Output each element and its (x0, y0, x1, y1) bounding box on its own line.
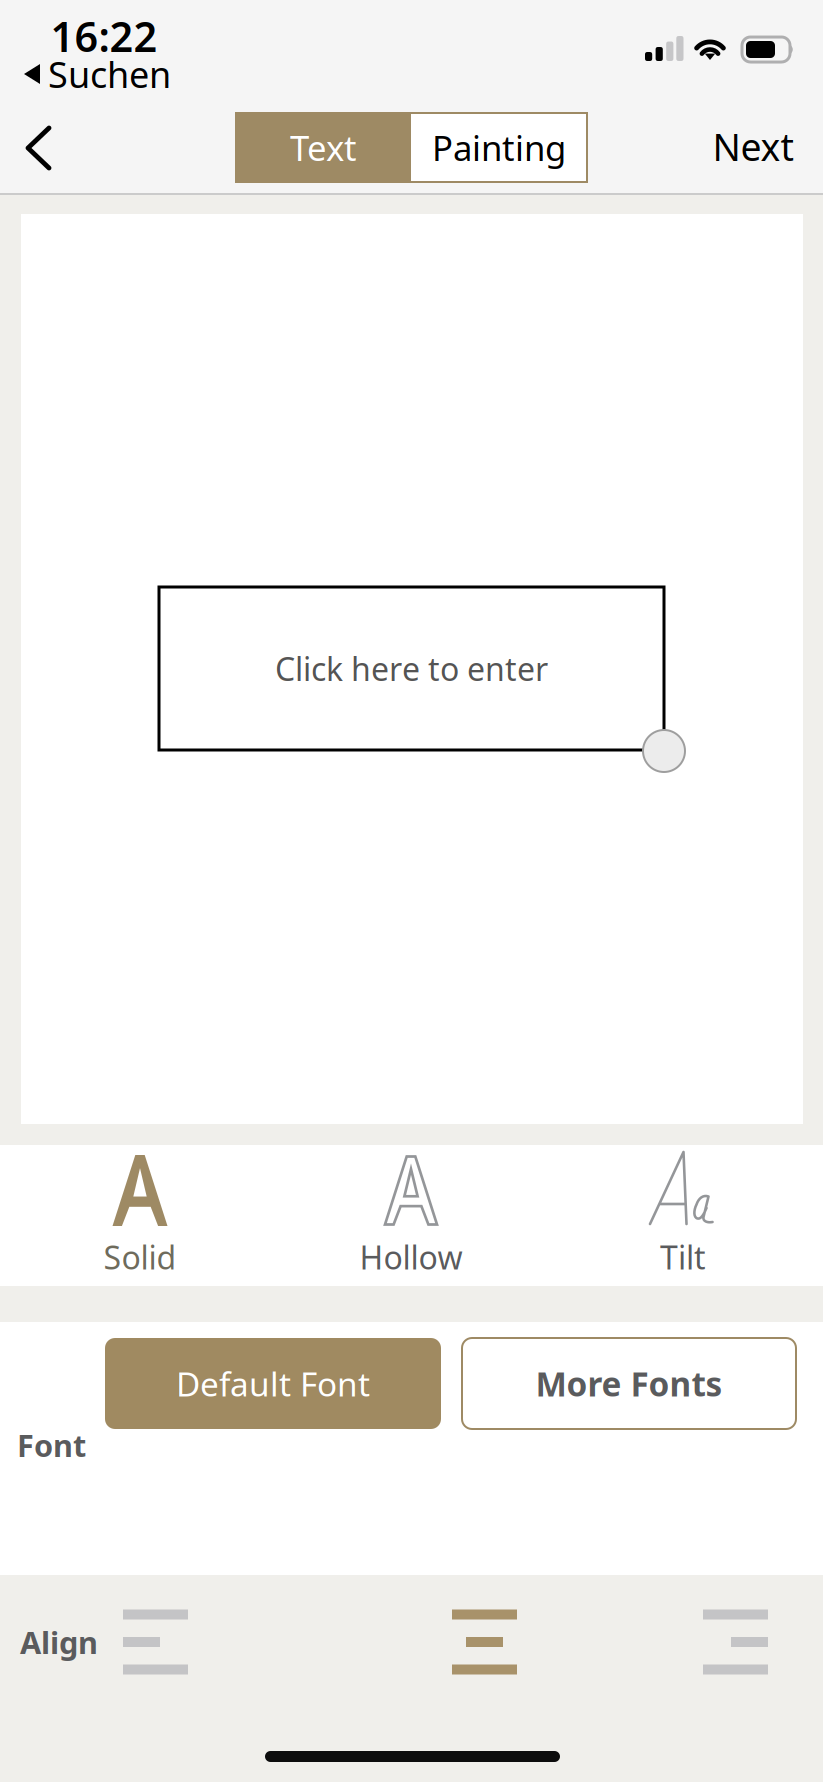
button[interactable]: Align right (673, 1594, 798, 1690)
button[interactable]: Suchen (24, 56, 171, 92)
button[interactable]: Click here to enter (159, 587, 664, 750)
button[interactable]: Hollow (311, 1145, 511, 1286)
button[interactable]: Tilt (583, 1145, 783, 1286)
staticText: Next (712, 122, 793, 171)
staticText: Default Font (176, 1361, 370, 1406)
staticText: 16:22 (50, 9, 157, 63)
staticText: Align (20, 1622, 98, 1662)
button[interactable]: Back (0, 100, 80, 195)
button[interactable]: Next (691, 100, 815, 193)
staticText: Tilt (660, 1236, 706, 1278)
button[interactable]: Text (236, 113, 411, 182)
staticText: More Fonts (535, 1361, 722, 1406)
button[interactable]: Align left (93, 1594, 218, 1690)
staticText: Hollow (359, 1236, 462, 1278)
button[interactable]: More Fonts (462, 1338, 796, 1429)
staticText: Text (290, 124, 357, 170)
button[interactable]: Default Font (105, 1338, 441, 1429)
button[interactable]: Painting (411, 113, 587, 182)
staticText: Font (17, 1425, 86, 1465)
staticText: Solid (103, 1236, 176, 1278)
staticText: Painting (432, 124, 566, 170)
staticText: Suchen (48, 50, 171, 98)
button[interactable]: Solid (40, 1145, 240, 1286)
button[interactable]: Align center (422, 1594, 547, 1690)
staticText: Click here to enter (275, 647, 548, 690)
